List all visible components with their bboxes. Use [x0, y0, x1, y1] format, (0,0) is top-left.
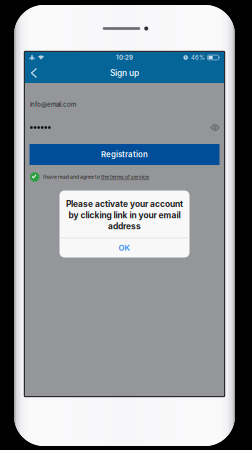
staticText: 46% — [191, 54, 205, 61]
button[interactable]: OK — [59, 238, 189, 257]
staticText: address — [108, 221, 141, 231]
staticText: OK — [118, 243, 130, 253]
button[interactable] — [25, 116, 224, 139]
button[interactable]: I have read and agree to the terms of se… — [25, 165, 224, 189]
staticText: 10:29 — [116, 54, 133, 61]
staticText: Sign up — [110, 68, 139, 78]
button[interactable]: Registration — [29, 144, 219, 165]
button[interactable]: Back — [25, 63, 43, 83]
staticText: Registration — [101, 150, 148, 159]
staticText: Please activate your account — [66, 199, 183, 209]
staticText: by clicking link in your email — [68, 210, 180, 220]
staticText: I have read and agree to the terms of se… — [43, 174, 149, 180]
button[interactable]: info@email.com — [25, 93, 224, 116]
staticText: info@email.com — [30, 101, 76, 108]
